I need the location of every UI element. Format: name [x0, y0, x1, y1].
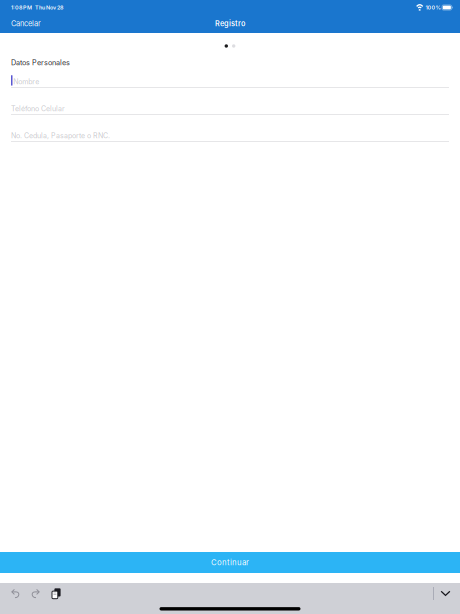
button[interactable]: Undo — [6, 584, 25, 603]
button[interactable]: Cancelar — [0, 14, 52, 32]
staticText: Teléfono Celular — [11, 104, 65, 113]
button[interactable]: Paste — [46, 584, 66, 603]
staticText: Cancelar — [11, 19, 41, 28]
button[interactable]: Hide keyboard — [434, 584, 454, 603]
staticText: 1:08 PM Thu Nov 28 — [11, 4, 63, 11]
staticText: Datos Personales — [11, 58, 70, 67]
staticText: Continuar — [211, 558, 249, 567]
button[interactable]: Continuar — [0, 552, 460, 573]
button[interactable]: Redo — [25, 584, 46, 603]
staticText: 100% — [425, 4, 440, 11]
staticText: No. Cedula, Pasaporte o RNC. — [11, 131, 110, 140]
staticText: Nombre — [13, 77, 39, 86]
staticText: Registro — [215, 19, 245, 28]
